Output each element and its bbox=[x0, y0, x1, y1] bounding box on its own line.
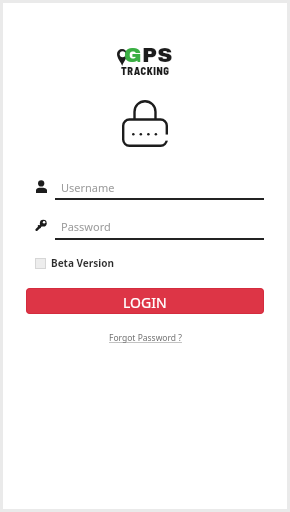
staticText: Username bbox=[61, 180, 115, 195]
staticText: TRACKING bbox=[121, 64, 170, 77]
staticText: G bbox=[124, 44, 142, 67]
button[interactable]: Beta Version bbox=[35, 256, 115, 270]
staticText: Password bbox=[61, 219, 111, 234]
button[interactable]: Password bbox=[26, 214, 264, 240]
button[interactable]: Username bbox=[26, 175, 264, 200]
staticText: LOGIN bbox=[123, 293, 167, 312]
button[interactable]: Forgot Password ? bbox=[109, 332, 182, 344]
button[interactable]: LOGIN bbox=[26, 288, 264, 314]
staticText: PS bbox=[142, 44, 173, 67]
staticText: Beta Version bbox=[51, 256, 115, 270]
